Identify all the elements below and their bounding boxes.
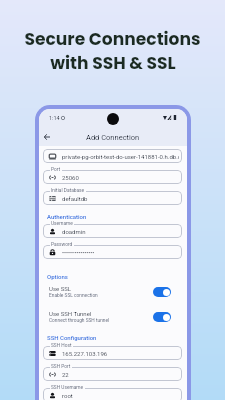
button[interactable]: root bbox=[43, 388, 182, 400]
staticText: 22 bbox=[62, 371, 69, 378]
button[interactable]: Back bbox=[40, 130, 54, 144]
button[interactable]: defaultdb bbox=[43, 191, 182, 205]
button[interactable]: 25060 bbox=[43, 170, 182, 184]
button[interactable]: •••••••••••••••• bbox=[43, 245, 182, 259]
button[interactable]: 22 bbox=[43, 367, 182, 381]
button[interactable]: Use SSH Tunnel bbox=[43, 309, 182, 325]
staticText: •••••••••••••••• bbox=[62, 249, 95, 256]
staticText: Username bbox=[51, 221, 73, 227]
staticText: Options bbox=[47, 273, 68, 280]
staticText: SSH Configuration bbox=[47, 334, 97, 341]
staticText: 165.227.103.196 bbox=[62, 350, 108, 357]
staticText: root bbox=[62, 392, 73, 399]
staticText: private-pg-orbit-test-do-user-141881-0.h… bbox=[62, 153, 179, 160]
staticText: Port bbox=[51, 167, 61, 173]
staticText: SSH Port bbox=[51, 364, 71, 370]
staticText: 1:14 bbox=[49, 115, 60, 121]
staticText: 25060 bbox=[62, 174, 79, 181]
button[interactable]: private-pg-orbit-test-do-user-141881-0.h… bbox=[43, 149, 182, 163]
staticText: SSH Username bbox=[51, 385, 84, 391]
staticText: Password bbox=[51, 242, 73, 248]
button[interactable]: doadmin bbox=[43, 224, 182, 238]
staticText: SSH Host bbox=[51, 343, 72, 349]
staticText: defaultdb bbox=[62, 195, 88, 202]
staticText: doadmin bbox=[62, 228, 86, 235]
staticText: Use SSH Tunnel bbox=[49, 310, 92, 317]
staticText: with SSH & SSL bbox=[50, 51, 176, 75]
staticText: Add Connection bbox=[86, 133, 140, 142]
staticText: Authentication bbox=[47, 213, 87, 220]
staticText: Enable SSL connection bbox=[49, 293, 98, 299]
staticText: Secure Connections bbox=[24, 27, 201, 51]
button[interactable]: Use SSL bbox=[43, 284, 182, 300]
button[interactable]: 165.227.103.196 bbox=[43, 346, 182, 360]
staticText: Initial Database bbox=[51, 188, 85, 194]
staticText: Connect through SSH tunnel bbox=[49, 318, 110, 324]
staticText: Use SSL bbox=[49, 285, 72, 292]
